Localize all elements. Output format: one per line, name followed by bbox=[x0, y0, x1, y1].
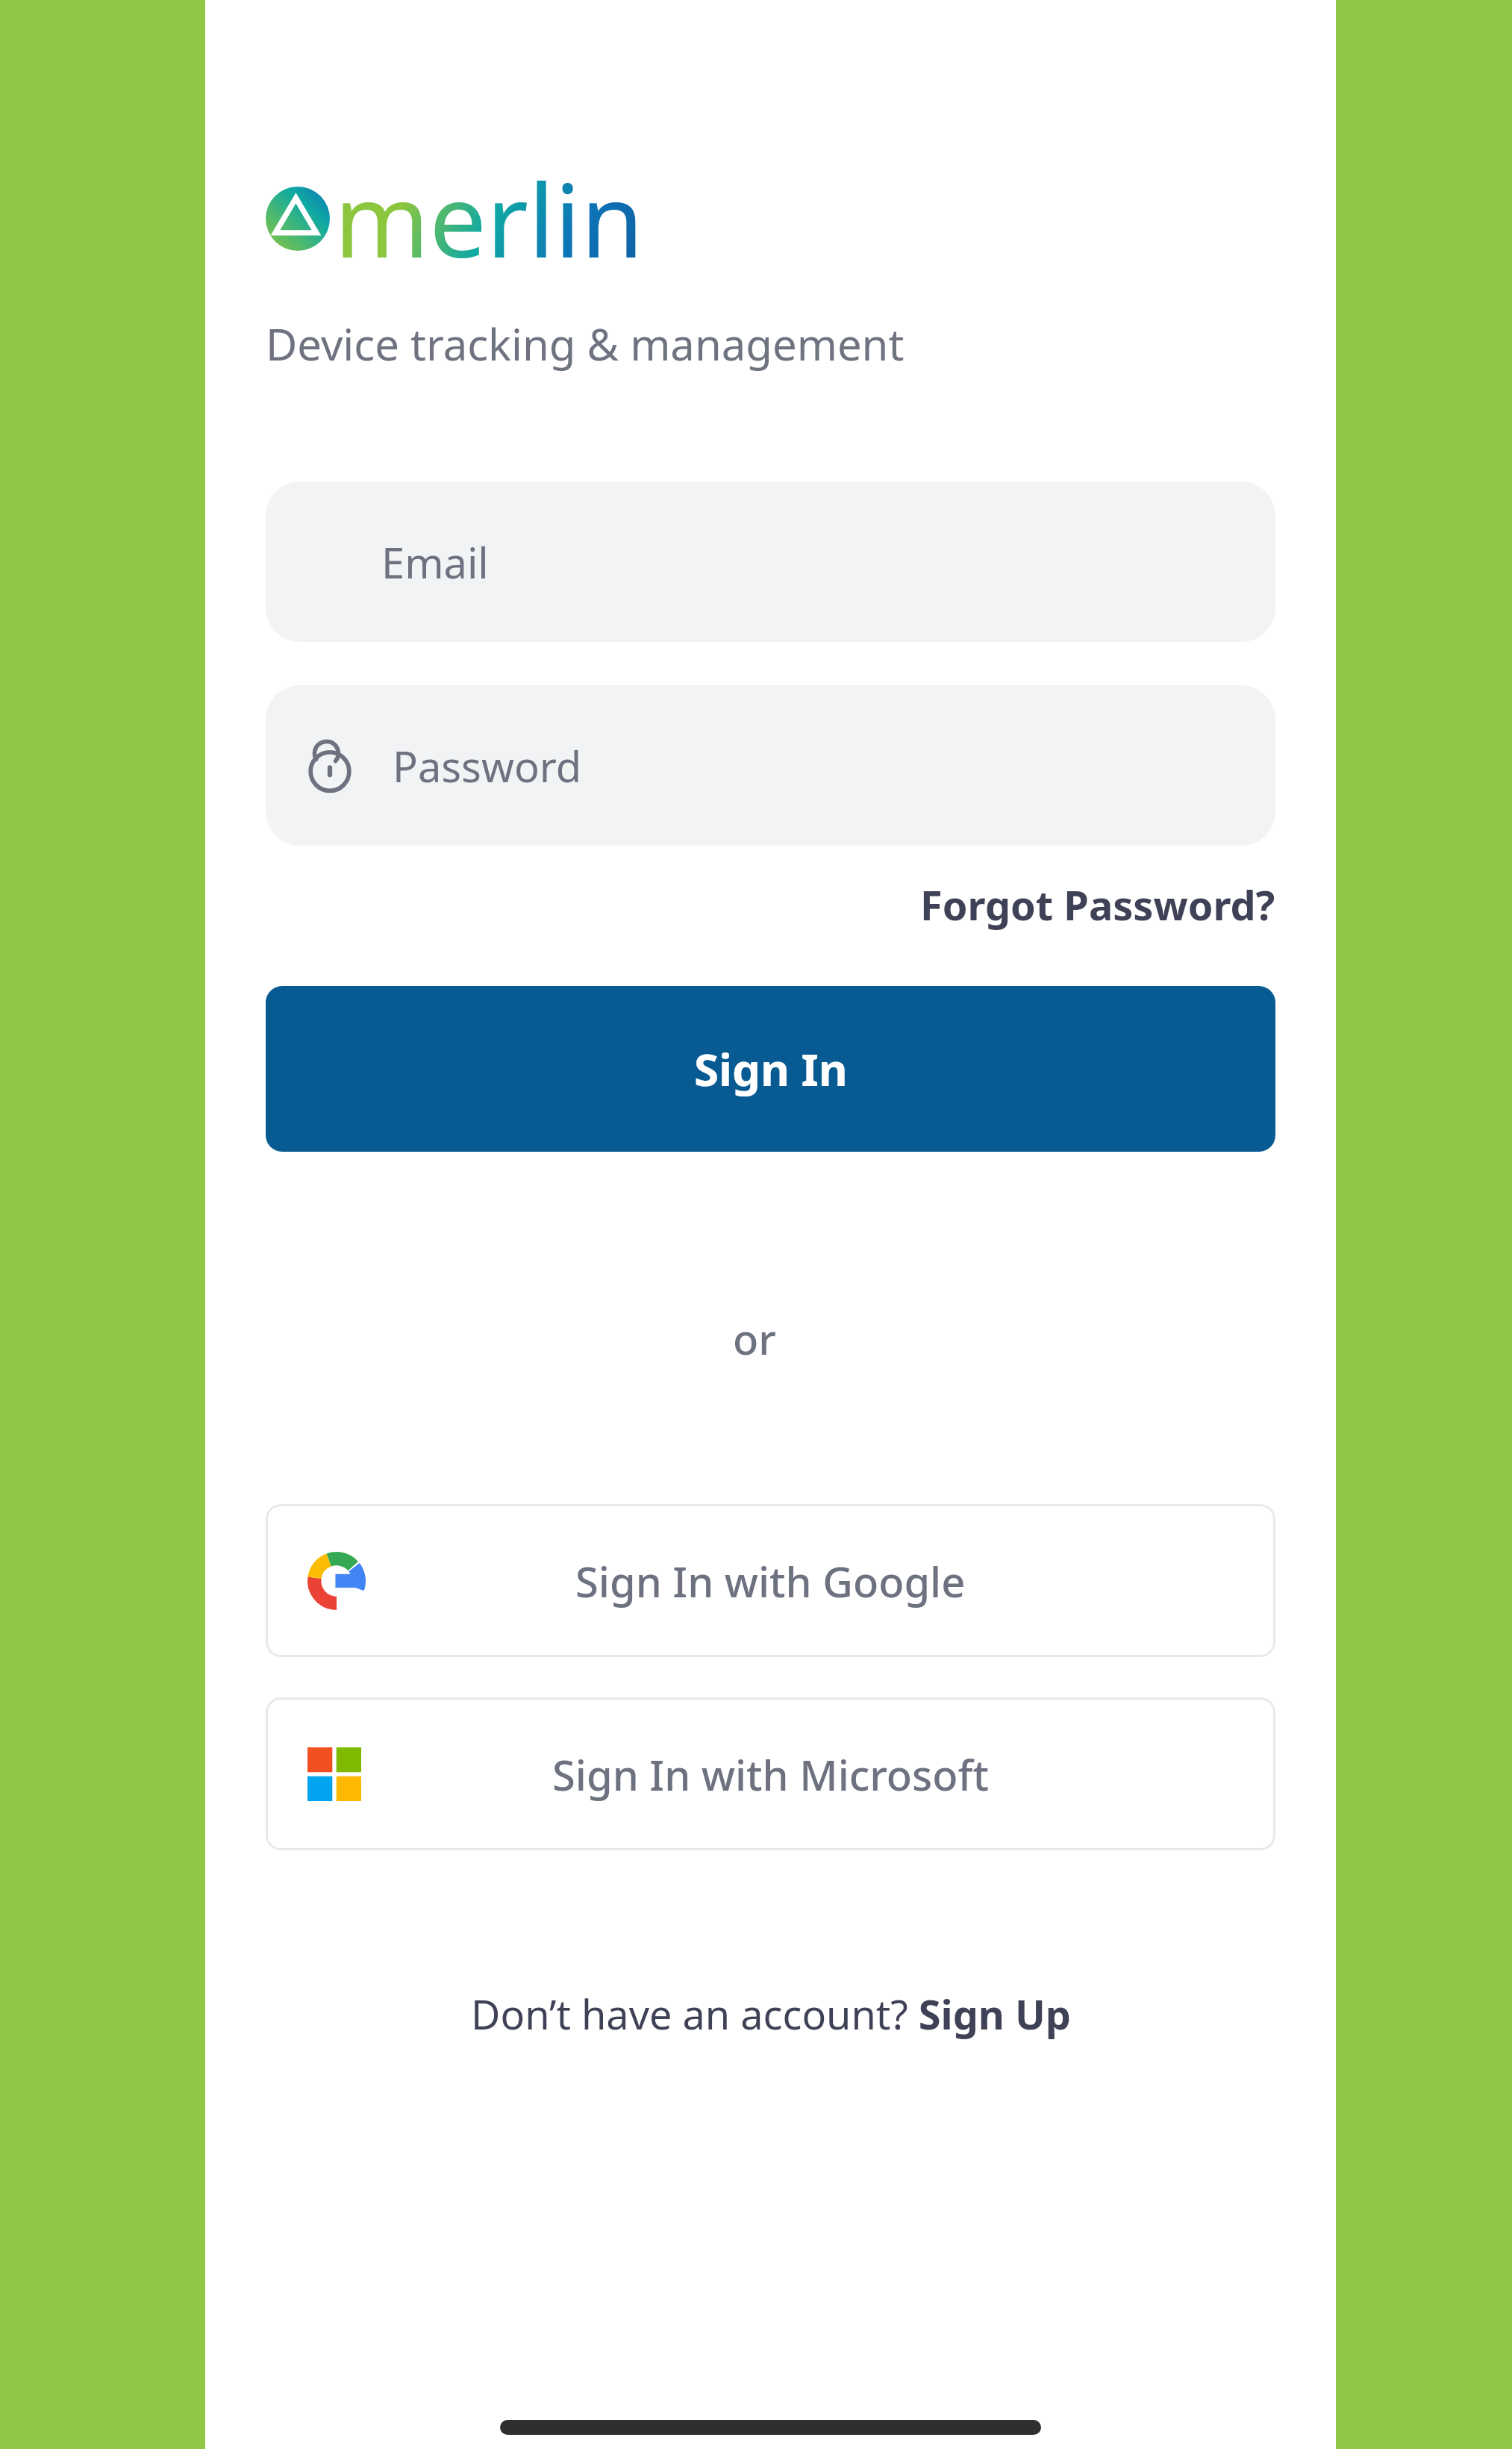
button[interactable]: Sign In with Google bbox=[266, 1504, 1275, 1657]
button[interactable]: Email bbox=[266, 481, 1275, 642]
staticText: Forgot Password? bbox=[920, 877, 1275, 932]
staticText: Sign In with Google bbox=[575, 1553, 966, 1609]
button[interactable]: Forgot Password? bbox=[920, 868, 1275, 941]
button[interactable]: Sign In with Microsoft bbox=[266, 1697, 1275, 1850]
button[interactable]: Sign In bbox=[266, 986, 1275, 1152]
button[interactable]: Password bbox=[266, 685, 1275, 846]
staticText: or bbox=[733, 1310, 776, 1367]
staticText: Device tracking & management bbox=[266, 314, 905, 373]
staticText: Email bbox=[381, 534, 489, 590]
staticText: Sign In bbox=[694, 1038, 848, 1099]
staticText: Sign In with Microsoft bbox=[552, 1746, 989, 1803]
button[interactable]: Don’t have an account? Sign Up bbox=[465, 1977, 1077, 2050]
staticText: Don’t have an account? Sign Up bbox=[471, 1986, 1071, 2041]
staticText: Password bbox=[393, 737, 582, 794]
staticText: merlin bbox=[334, 149, 644, 287]
